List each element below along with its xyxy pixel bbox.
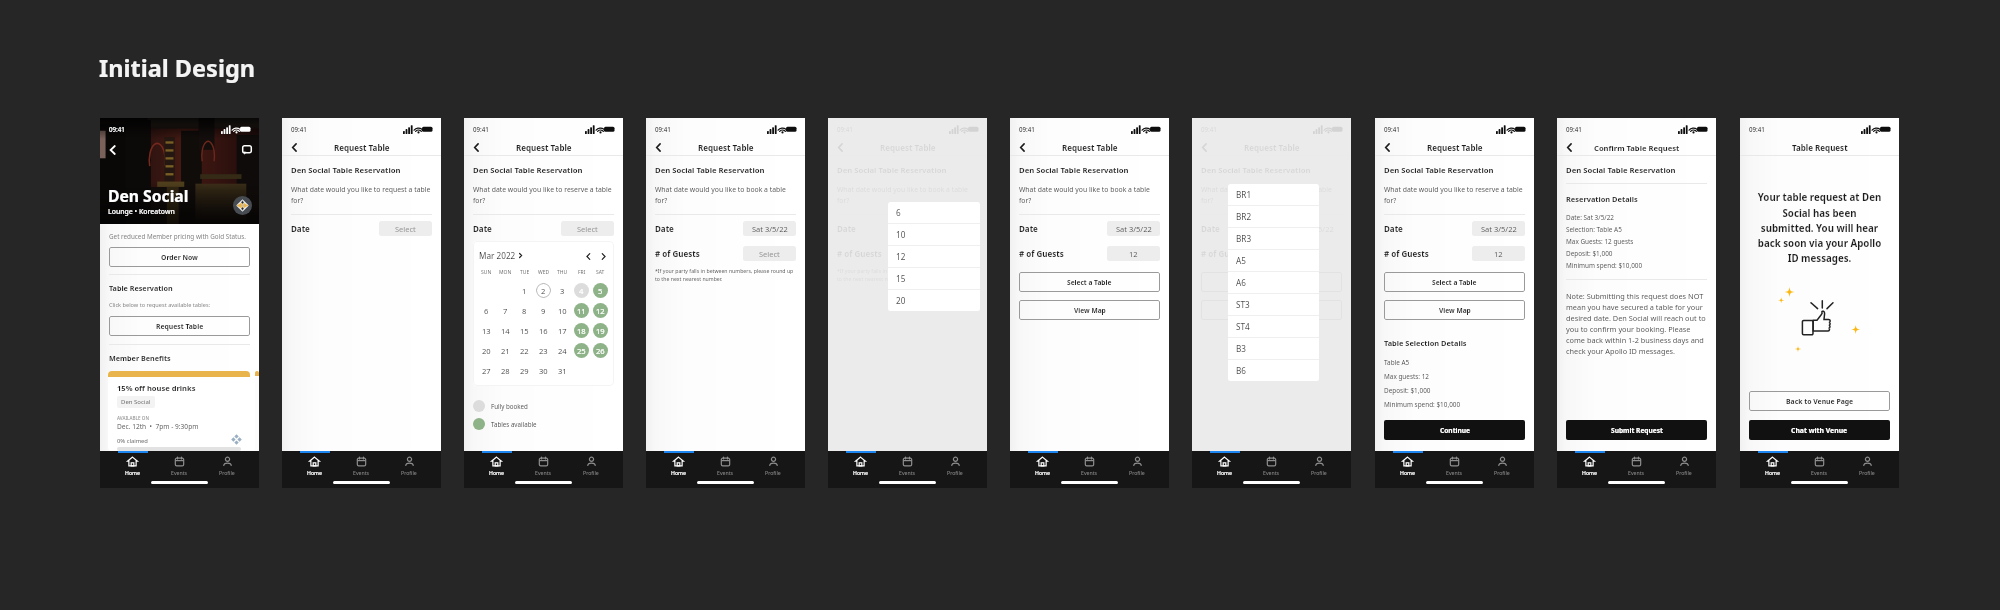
button[interactable]: BR2: [1228, 206, 1319, 227]
button[interactable]: View Map: [1384, 300, 1525, 320]
button[interactable]: Back to Venue Page: [1749, 391, 1890, 411]
button[interactable]: Home: [1209, 455, 1240, 477]
button[interactable]: Order Now: [109, 247, 250, 267]
button[interactable]: 7: [498, 303, 513, 318]
button[interactable]: 30: [536, 363, 551, 378]
button[interactable]: Home: [481, 455, 512, 477]
button[interactable]: 6: [888, 202, 980, 223]
button[interactable]: Select a Table: [1384, 272, 1525, 292]
button[interactable]: Events: [163, 455, 196, 477]
button[interactable]: Profile: [575, 455, 607, 477]
button[interactable]: Back: [1016, 141, 1029, 154]
button[interactable]: Events: [527, 455, 560, 477]
button[interactable]: Events: [1255, 455, 1288, 477]
button[interactable]: 21: [498, 343, 513, 358]
button[interactable]: 3: [555, 283, 570, 298]
button[interactable]: 4: [574, 283, 589, 298]
button[interactable]: 1: [517, 283, 532, 298]
button[interactable]: Profile: [939, 455, 971, 477]
button[interactable]: 28: [498, 363, 513, 378]
button[interactable]: View Map: [1201, 300, 1342, 320]
button[interactable]: Back: [652, 141, 665, 154]
button[interactable]: Back: [834, 141, 847, 154]
button[interactable]: Events: [345, 455, 378, 477]
button[interactable]: Events: [1073, 455, 1106, 477]
button[interactable]: 16: [536, 323, 551, 338]
button[interactable]: 12: [888, 246, 980, 267]
button[interactable]: 27: [479, 363, 494, 378]
button[interactable]: Select: [379, 221, 432, 236]
button[interactable]: Select a Table: [1019, 272, 1160, 292]
button[interactable]: 24: [555, 343, 570, 358]
button[interactable]: ST4: [1228, 316, 1319, 337]
button[interactable]: Events: [1803, 455, 1836, 477]
button[interactable]: Sat 3/5/22: [1107, 221, 1160, 236]
button[interactable]: Select a Table: [1201, 272, 1342, 292]
button[interactable]: 12: [1472, 246, 1525, 261]
button[interactable]: Home: [845, 455, 876, 477]
button[interactable]: 23: [536, 343, 551, 358]
button[interactable]: View Map: [1019, 300, 1160, 320]
button[interactable]: 31: [555, 363, 570, 378]
button[interactable]: Home: [117, 455, 148, 477]
button[interactable]: 13: [479, 323, 494, 338]
button[interactable]: 12: [593, 303, 608, 318]
button[interactable]: ST3: [1228, 294, 1319, 315]
button[interactable]: 15% off house drinks: [108, 371, 250, 451]
button[interactable]: Home: [1574, 455, 1605, 477]
button[interactable]: Sat 3/5/22: [1289, 221, 1342, 236]
button[interactable]: A5: [1228, 250, 1319, 271]
button[interactable]: 29: [517, 363, 532, 378]
button[interactable]: Home: [663, 455, 694, 477]
button[interactable]: Mar 2022: [479, 250, 523, 261]
button[interactable]: B3: [1228, 338, 1319, 359]
button[interactable]: 19: [593, 323, 608, 338]
button[interactable]: 12: [1289, 246, 1342, 261]
button[interactable]: Profile: [211, 455, 243, 477]
button[interactable]: 12: [1107, 246, 1160, 261]
button[interactable]: Profile: [757, 455, 789, 477]
button[interactable]: Home: [1027, 455, 1058, 477]
button[interactable]: 10: [888, 224, 980, 245]
button[interactable]: Chat with Venue: [1749, 420, 1890, 440]
button[interactable]: Events: [1620, 455, 1653, 477]
button[interactable]: BR3: [1228, 228, 1319, 249]
button[interactable]: 6: [479, 303, 494, 318]
button[interactable]: Gold status badge: [233, 196, 252, 215]
button[interactable]: 9: [536, 303, 551, 318]
button[interactable]: 20: [479, 343, 494, 358]
button[interactable]: Back: [1563, 141, 1576, 154]
button[interactable]: Back: [288, 141, 301, 154]
button[interactable]: 18: [574, 323, 589, 338]
button[interactable]: Events: [1438, 455, 1471, 477]
button[interactable]: Profile: [1486, 455, 1518, 477]
button[interactable]: 22: [517, 343, 532, 358]
button[interactable]: Events: [891, 455, 924, 477]
button[interactable]: Continue: [1384, 420, 1525, 440]
button[interactable]: Profile: [1303, 455, 1335, 477]
button[interactable]: Back: [1381, 141, 1394, 154]
button[interactable]: Sat 3/5/22: [925, 221, 978, 236]
button[interactable]: Sat 3/5/22: [743, 221, 796, 236]
button[interactable]: Request Table: [109, 316, 250, 336]
button[interactable]: Back: [106, 143, 119, 156]
button[interactable]: Sat 3/5/22: [1472, 221, 1525, 236]
button[interactable]: Back: [1198, 141, 1211, 154]
button[interactable]: 10: [555, 303, 570, 318]
button[interactable]: 26: [593, 343, 608, 358]
button[interactable]: B6: [1228, 360, 1319, 381]
button[interactable]: Next month: [598, 251, 608, 261]
button[interactable]: Submit Request: [1566, 420, 1707, 440]
button[interactable]: Back: [470, 141, 483, 154]
button[interactable]: 20: [888, 290, 980, 311]
button[interactable]: Events: [709, 455, 742, 477]
button[interactable]: BR1: [1228, 184, 1319, 205]
button[interactable]: 5: [593, 283, 608, 298]
button[interactable]: A6: [1228, 272, 1319, 293]
button[interactable]: 25: [574, 343, 589, 358]
button[interactable]: Home: [299, 455, 330, 477]
button[interactable]: 15: [517, 323, 532, 338]
button[interactable]: Profile: [1668, 455, 1700, 477]
button[interactable]: Previous month: [583, 251, 593, 261]
